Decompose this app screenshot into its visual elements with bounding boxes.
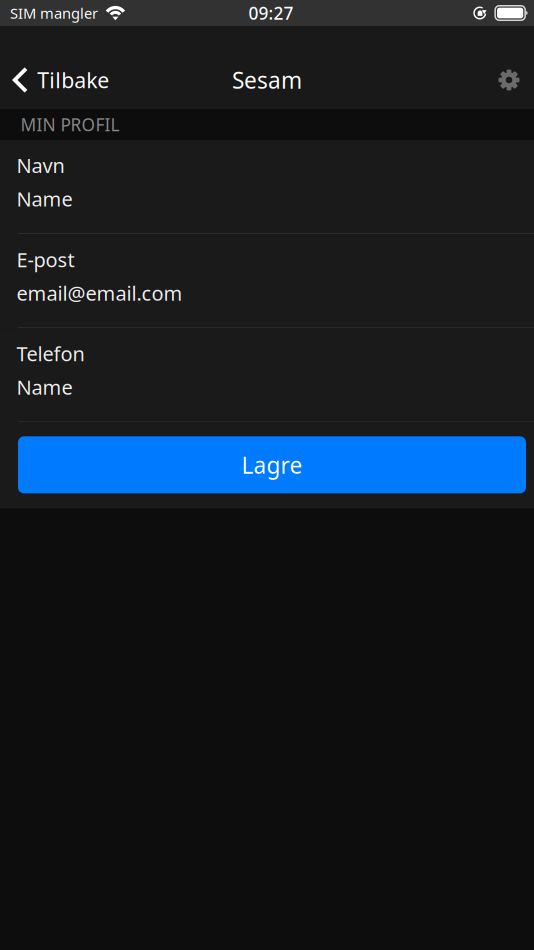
button[interactable]: Settings — [489, 60, 529, 100]
staticText: Tilbake — [37, 66, 109, 94]
staticText: Name — [16, 186, 72, 212]
button[interactable]: E-post — [0, 234, 534, 328]
staticText: SIM mangler — [10, 3, 98, 23]
button[interactable]: Navn — [0, 140, 534, 234]
staticText: MIN PROFIL — [20, 113, 119, 136]
staticText: 09:27 — [248, 1, 293, 24]
button[interactable]: Lagre — [18, 436, 526, 493]
staticText: E-post — [16, 246, 74, 273]
staticText: Telefon — [16, 340, 84, 367]
staticText: Lagre — [241, 450, 302, 480]
staticText: Name — [16, 374, 72, 400]
button[interactable]: Tilbake — [0, 60, 119, 100]
staticText: email@email.com — [16, 280, 182, 306]
button[interactable]: Telefon — [0, 328, 534, 422]
staticText: Sesam — [232, 65, 302, 95]
staticText: Navn — [16, 152, 64, 179]
